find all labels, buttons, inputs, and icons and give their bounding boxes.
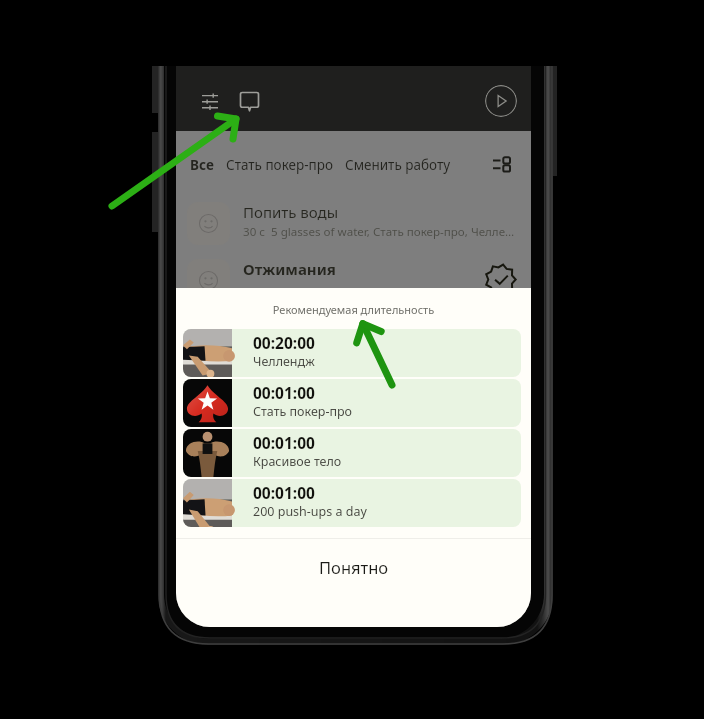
button[interactable]: 00:01:00 [183, 379, 521, 427]
staticText: Понятно [319, 556, 389, 578]
button[interactable]: Стать покер-про [220, 150, 339, 180]
staticText: 00:01:00 [253, 382, 315, 403]
button[interactable]: Sort [490, 154, 512, 176]
staticText: Челлендж [253, 353, 315, 370]
staticText: Красивое тело [253, 453, 342, 470]
button[interactable]: Сменить работу [339, 150, 457, 180]
button[interactable]: 00:20:00 [183, 329, 521, 377]
staticText: 00:01:00 [253, 432, 315, 453]
button[interactable]: 00:01:00 [183, 429, 521, 477]
staticText: 00:20:00 [253, 332, 315, 353]
staticText: Рекомендуемая длительность [176, 302, 531, 317]
button[interactable]: Отжимания [176, 252, 531, 309]
staticText: 200 push-ups a day [253, 503, 367, 520]
button[interactable]: Comments [232, 78, 268, 114]
button[interactable]: Попить воды [176, 195, 531, 252]
staticText: 30 с 5 glasses of water, Стать покер-про… [243, 224, 515, 240]
button[interactable]: Verified [485, 264, 516, 295]
button[interactable]: Filters [192, 78, 228, 114]
staticText: Стать покер-про [253, 403, 353, 420]
button[interactable]: Понятно [176, 539, 531, 594]
button[interactable]: Play [485, 85, 517, 117]
button[interactable]: Все [184, 150, 220, 180]
staticText: Попить воды [243, 202, 339, 222]
staticText: Отжимания [243, 259, 336, 279]
staticText: 00:01:00 [253, 482, 315, 503]
button[interactable]: 00:01:00 [183, 479, 521, 527]
